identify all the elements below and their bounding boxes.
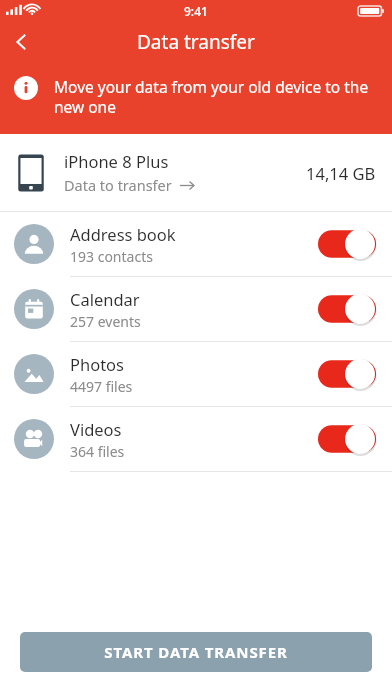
staticText: iPhone 8 Plus [64,150,169,172]
staticText: Address book [70,223,176,245]
staticText: 9:41 [184,3,208,19]
button[interactable]: Toggle on [318,358,376,390]
staticText: 14,14 GB [306,162,376,184]
staticText: 364 files [70,442,125,461]
staticText: Videos [70,418,122,440]
staticText: 257 events [70,312,141,331]
button[interactable]: START DATA TRANSFER [20,632,372,672]
button[interactable]: Photos [0,342,392,406]
staticText: Data transfer [137,29,255,55]
staticText: 193 contacts [70,247,153,266]
button[interactable]: Toggle on [318,423,376,455]
staticText: Photos [70,353,125,375]
button[interactable]: iPhone 8 Plus [0,134,392,211]
staticText: Move your data from your old device to t… [54,76,372,118]
button[interactable]: Address book [0,212,392,276]
button[interactable]: Toggle on [318,293,376,325]
button[interactable]: Back [0,22,44,62]
staticText: START DATA TRANSFER [104,642,288,662]
staticText: Calendar [70,288,140,310]
staticText: Data to transfer [64,175,172,195]
staticText: 4497 files [70,377,133,396]
button[interactable]: Videos [0,407,392,471]
button[interactable]: Calendar [0,277,392,341]
button[interactable]: Toggle on [318,228,376,260]
